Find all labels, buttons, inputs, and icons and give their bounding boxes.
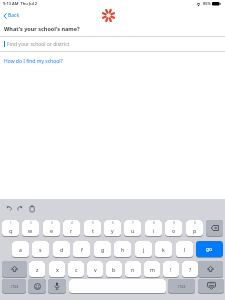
button[interactable]: 8 — [145, 220, 162, 236]
staticText: 9:13 AM Thu Jul 2 — [3, 1, 38, 6]
button[interactable]: 7 — [124, 220, 141, 236]
staticText: w — [28, 227, 33, 234]
button[interactable]: Find your school or district — [7, 41, 70, 48]
staticText: 0 — [194, 221, 196, 225]
staticText: j — [143, 246, 145, 253]
button[interactable]: 3 — [43, 220, 60, 236]
button[interactable] — [69, 279, 166, 293]
button[interactable]: v — [87, 261, 103, 277]
staticText: d — [60, 246, 64, 253]
staticText: t — [92, 227, 94, 234]
button[interactable] — [48, 279, 66, 293]
staticText: s — [39, 246, 42, 253]
button[interactable]: 1 — [2, 220, 19, 236]
button[interactable]: ? — [182, 261, 198, 277]
staticText: ? — [189, 266, 192, 273]
staticText: 6 — [112, 221, 114, 225]
staticText: p — [193, 227, 197, 234]
staticText: 1 — [10, 221, 12, 225]
button[interactable]: 9 — [165, 220, 182, 236]
staticText: h — [121, 246, 125, 253]
button[interactable]: x — [49, 261, 65, 277]
button[interactable] — [198, 261, 223, 277]
button[interactable]: 5 — [84, 220, 101, 236]
staticText: 85% — [203, 1, 212, 6]
button[interactable]: h — [114, 241, 131, 257]
staticText: z — [36, 266, 39, 273]
button[interactable]: ! — [163, 261, 179, 277]
staticText: 4 — [71, 221, 73, 225]
staticText: y — [111, 227, 114, 234]
button[interactable] — [206, 220, 223, 236]
staticText: x — [56, 266, 59, 273]
staticText: 2 — [30, 221, 32, 225]
button[interactable]: a — [12, 241, 29, 257]
button[interactable]: go — [196, 241, 223, 257]
staticText: b — [112, 266, 116, 273]
button[interactable] — [2, 261, 27, 277]
button[interactable]: 2 — [22, 220, 39, 236]
button[interactable]: f — [73, 241, 90, 257]
button[interactable]: 6 — [104, 220, 121, 236]
staticText: l — [184, 246, 186, 253]
staticText: 9 — [173, 221, 175, 225]
staticText: 3 — [51, 221, 53, 225]
staticText: 7 — [132, 221, 134, 225]
button[interactable]: 4 — [63, 220, 80, 236]
staticText: a — [19, 246, 22, 253]
staticText: Back — [8, 12, 20, 19]
button[interactable]: c — [68, 261, 84, 277]
staticText: e — [50, 227, 53, 234]
button[interactable]: b — [106, 261, 122, 277]
button[interactable]: How do I find my school? — [4, 58, 63, 65]
staticText: g — [101, 246, 105, 253]
button[interactable]: z — [29, 261, 45, 277]
button[interactable]: .?123 — [168, 279, 195, 293]
staticText: ! — [170, 266, 172, 273]
staticText: What's your school's name? — [4, 25, 80, 32]
button[interactable]: .?123 — [2, 279, 26, 293]
staticText: o — [172, 227, 176, 234]
button[interactable]: d — [53, 241, 70, 257]
staticText: .?123 — [10, 284, 19, 289]
staticText: q — [9, 227, 13, 234]
button[interactable]: m — [144, 261, 160, 277]
staticText: v — [94, 266, 97, 273]
button[interactable]: s — [32, 241, 49, 257]
button[interactable]: g — [94, 241, 111, 257]
button[interactable]: n — [125, 261, 141, 277]
staticText: f — [81, 246, 83, 253]
staticText: .?123 — [177, 284, 186, 289]
button[interactable]: Back — [3, 12, 20, 19]
staticText: n — [131, 266, 135, 273]
button[interactable] — [198, 279, 224, 293]
staticText: c — [75, 266, 78, 273]
button[interactable]: k — [155, 241, 172, 257]
button[interactable] — [28, 279, 46, 293]
staticText: i — [153, 227, 155, 234]
button[interactable]: 0 — [186, 220, 203, 236]
staticText: m — [150, 266, 155, 273]
button[interactable]: l — [176, 241, 193, 257]
staticText: 5 — [92, 221, 94, 225]
staticText: k — [162, 246, 165, 253]
button[interactable]: j — [135, 241, 152, 257]
staticText: go — [206, 246, 213, 253]
staticText: u — [131, 227, 135, 234]
staticText: 8 — [153, 221, 155, 225]
staticText: r — [70, 227, 73, 234]
